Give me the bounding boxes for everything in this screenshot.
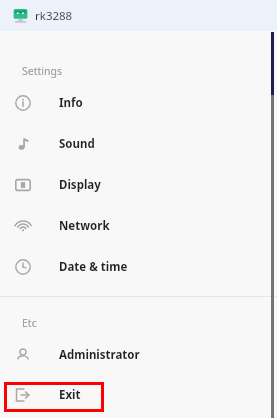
staticText: Settings xyxy=(22,64,62,78)
button[interactable]: Network xyxy=(0,205,277,246)
staticText: Sound xyxy=(59,136,95,152)
button[interactable]: Exit xyxy=(0,375,277,414)
button[interactable]: Sound xyxy=(0,123,277,164)
button[interactable]: Date & time xyxy=(0,246,277,287)
staticText: Date & time xyxy=(59,259,128,275)
staticText: Administrator xyxy=(59,347,140,363)
staticText: rk3288 xyxy=(35,8,73,24)
button[interactable]: Administrator xyxy=(0,334,277,375)
staticText: Display xyxy=(59,177,101,193)
staticText: Exit xyxy=(59,387,81,403)
other: Device rk3288 xyxy=(13,8,28,23)
staticText: Network xyxy=(59,218,110,234)
staticText: Etc xyxy=(22,316,37,330)
button[interactable]: Display xyxy=(0,164,277,205)
staticText: Info xyxy=(59,95,83,111)
button[interactable]: Info xyxy=(0,82,277,123)
